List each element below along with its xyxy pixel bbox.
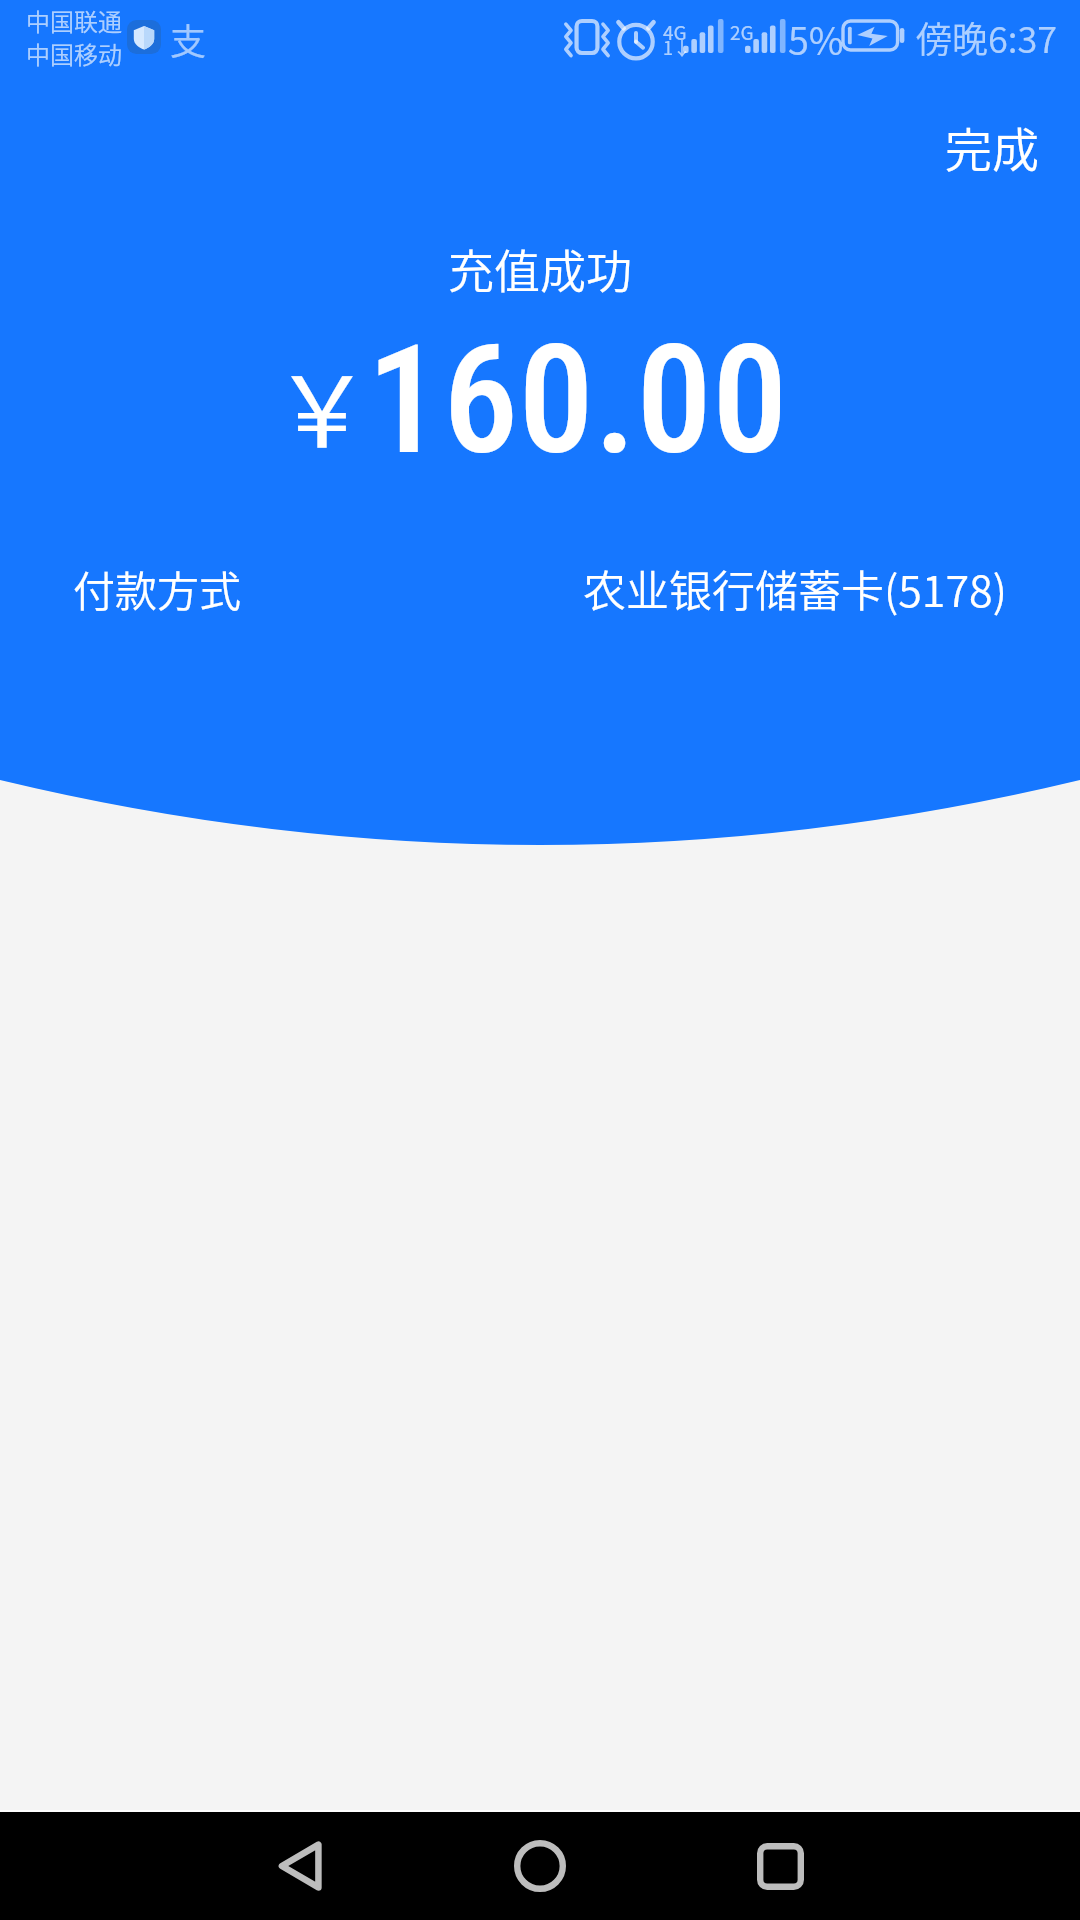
staticText: 160.00 (367, 312, 788, 489)
button[interactable]: Recent apps (732, 1818, 828, 1914)
staticText: ￥ (273, 333, 372, 475)
staticText: 充值成功 (448, 235, 632, 302)
staticText: 支 (170, 13, 207, 65)
button[interactable]: Home (492, 1818, 588, 1914)
staticText: 傍晚6:37 (916, 11, 1057, 63)
staticText: 完成 (945, 112, 1039, 180)
staticText: 4G (663, 18, 687, 46)
staticText: 中国联通 (26, 3, 122, 38)
staticText: 农业银行储蓄卡(5178) (583, 557, 1007, 619)
button[interactable]: Back (252, 1818, 348, 1914)
staticText: 5% (788, 11, 844, 66)
button[interactable]: 付款方式 (0, 549, 1080, 627)
button[interactable]: 完成 (905, 88, 1079, 204)
staticText: 2G (730, 18, 754, 46)
staticText: 1↓ (663, 34, 691, 60)
staticText: 付款方式 (73, 558, 242, 619)
staticText: 中国移动 (26, 36, 122, 71)
